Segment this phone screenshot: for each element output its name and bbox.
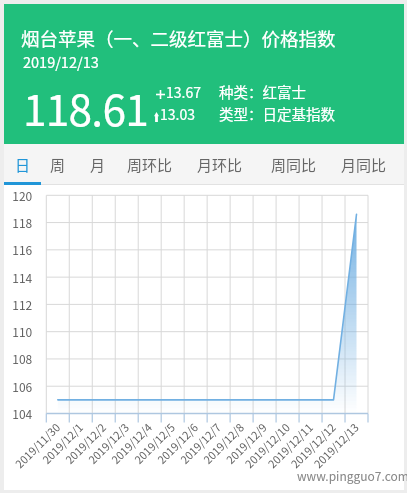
staticText: 日 (15, 154, 31, 176)
staticText: www.pingguo7.com (297, 467, 407, 484)
staticText: 种类：红富士 (219, 81, 306, 102)
button[interactable]: 月环比 (192, 144, 248, 185)
staticText: 2019/12/13 (23, 51, 99, 72)
staticText: 月 (90, 154, 106, 176)
staticText: 周环比 (127, 154, 173, 176)
staticText: 月环比 (197, 154, 243, 176)
staticText: 周 (50, 154, 66, 176)
button[interactable]: 月 (83, 144, 113, 185)
button[interactable]: 日 (8, 144, 38, 185)
staticText: 烟台苹果（一、二级红富士）价格指数 (21, 25, 336, 52)
staticText: 类型：日定基指数 (219, 103, 335, 124)
staticText: 13.03 (160, 104, 195, 124)
button[interactable]: 周同比 (266, 144, 322, 185)
button[interactable]: 月同比 (336, 144, 392, 185)
staticText: 13.67 (166, 82, 201, 102)
staticText: 周同比 (271, 154, 317, 176)
button[interactable]: 周环比 (122, 144, 178, 185)
staticText: 月同比 (341, 154, 387, 176)
staticText: 118.61 (23, 77, 148, 139)
button[interactable]: 周 (43, 144, 73, 185)
